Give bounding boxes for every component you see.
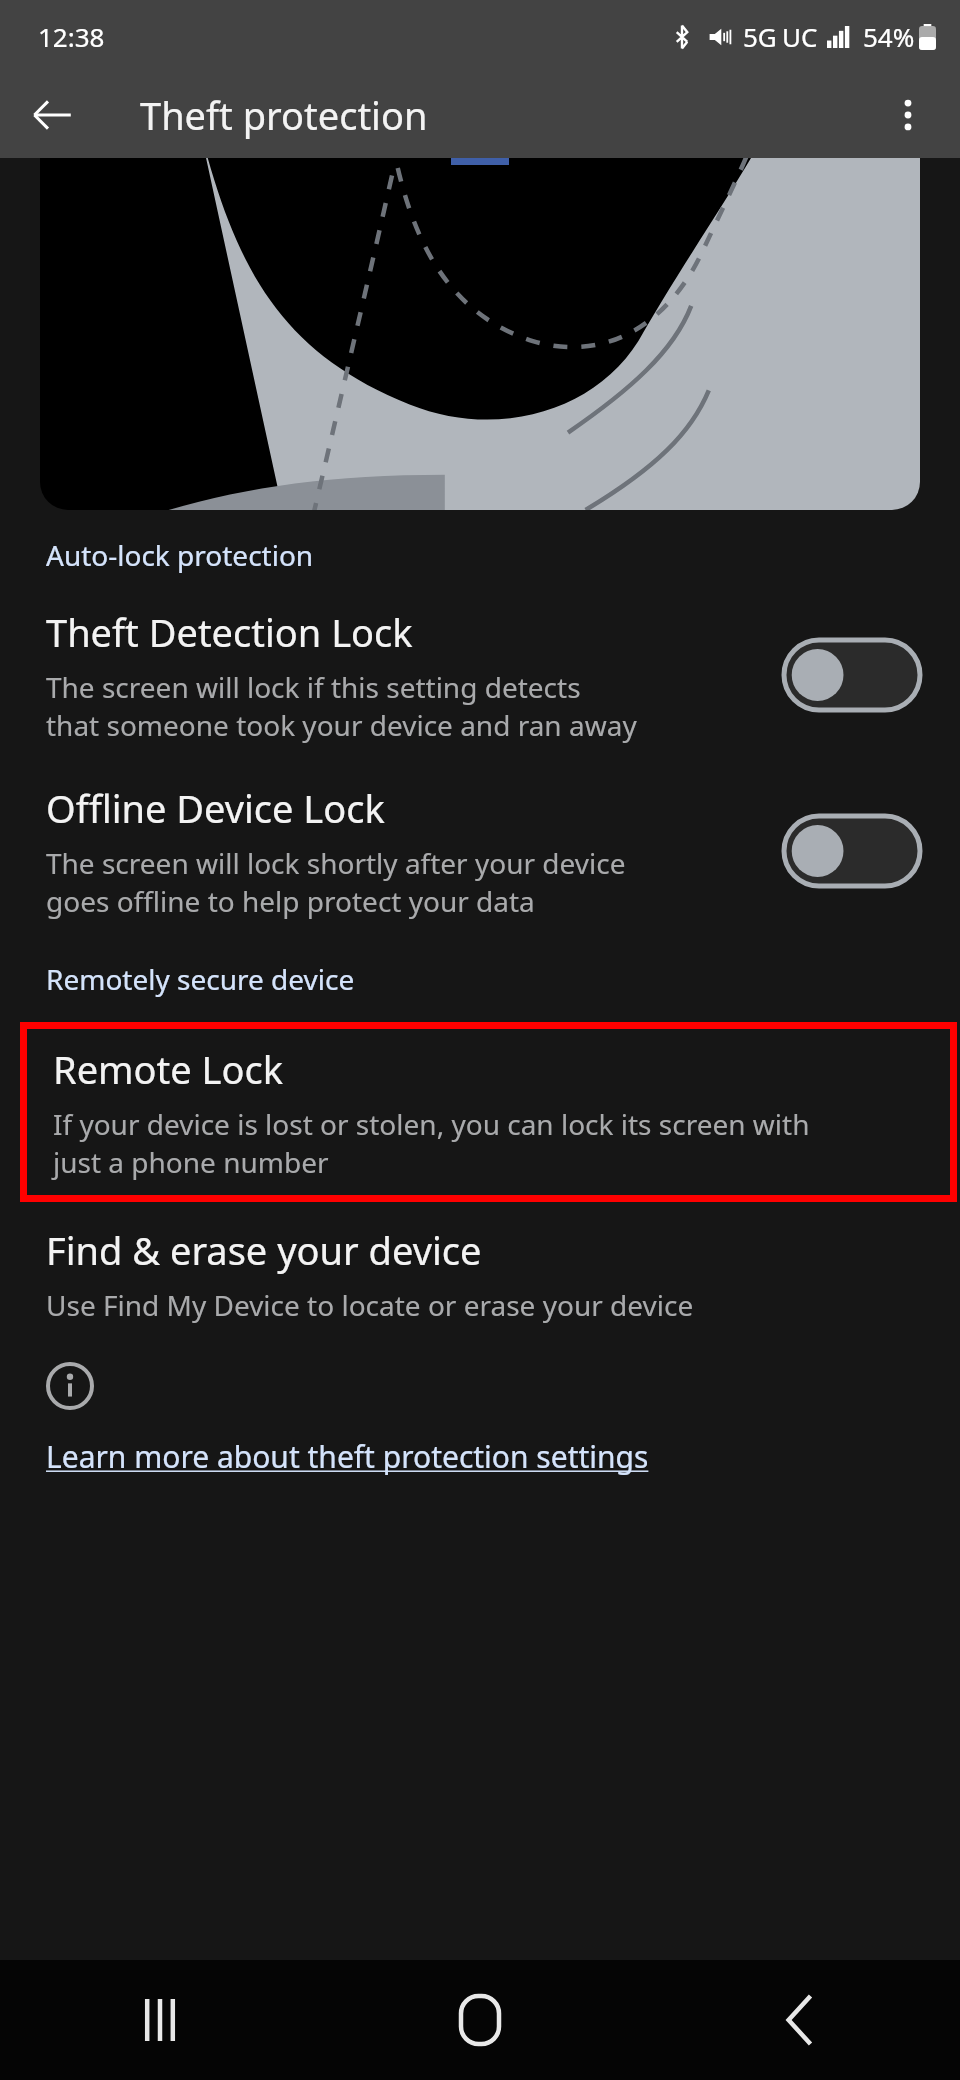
button[interactable]: Back — [640, 1960, 960, 2080]
button[interactable]: Theft Detection Lock — [0, 606, 960, 744]
staticText: 54% — [863, 19, 915, 54]
staticText: Use Find My Device to locate or erase yo… — [46, 1286, 694, 1324]
button[interactable]: Offline Device Lock — [0, 782, 960, 920]
staticText: Theft protection — [140, 89, 428, 141]
button[interactable]: Find & erase your device — [0, 1224, 960, 1324]
staticText: 5G — [743, 19, 777, 54]
staticText: The screen will lock shortly after your … — [46, 844, 626, 920]
button[interactable]: Toggle — [784, 640, 920, 710]
staticText: 12:38 — [38, 19, 105, 54]
staticText: Learn more about theft protection settin… — [46, 1436, 649, 1477]
staticText: UC — [782, 19, 818, 54]
staticText: Remotely secure device — [46, 960, 355, 998]
button[interactable]: Information — [46, 1362, 94, 1410]
staticText: Remote Lock — [53, 1043, 284, 1095]
button[interactable]: Back — [20, 83, 84, 147]
staticText: Auto-lock protection — [46, 536, 314, 574]
button[interactable]: More options — [876, 83, 940, 147]
button[interactable]: Toggle — [784, 816, 920, 886]
staticText: Find & erase your device — [46, 1224, 482, 1276]
staticText: The screen will lock if this setting det… — [46, 668, 637, 744]
staticText: If your device is lost or stolen, you ca… — [53, 1105, 810, 1181]
staticText: Theft Detection Lock — [46, 606, 413, 658]
button[interactable]: Recents — [0, 1960, 320, 2080]
button[interactable]: Learn more about theft protection settin… — [46, 1436, 649, 1477]
staticText: Offline Device Lock — [46, 782, 385, 834]
button[interactable]: Remote Lock — [27, 1029, 950, 1195]
button[interactable]: Home — [320, 1960, 640, 2080]
